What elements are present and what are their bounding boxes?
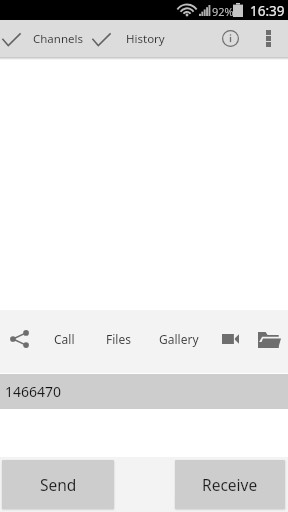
staticText: Call [54, 331, 75, 347]
staticText: 92% [212, 4, 234, 19]
button[interactable]: Call [42, 307, 87, 370]
button[interactable]: Send [2, 460, 114, 509]
staticText: 1466470 [5, 382, 62, 401]
button[interactable]: More options [252, 20, 285, 57]
staticText: Send [40, 474, 77, 495]
staticText: History [126, 31, 165, 47]
button[interactable]: Video call [212, 319, 248, 359]
button[interactable]: Files [100, 307, 137, 370]
button[interactable]: Receive [175, 460, 285, 509]
staticText: Gallery [159, 331, 199, 347]
button[interactable]: History [92, 20, 172, 57]
button[interactable]: 1466470 [0, 374, 288, 409]
button[interactable]: Gallery [155, 307, 203, 370]
button[interactable]: Open folder [250, 320, 288, 360]
staticText: Receive [202, 474, 258, 495]
staticText: 16:39 [250, 2, 285, 20]
staticText: Files [106, 331, 131, 347]
staticText: Channels [33, 31, 84, 47]
button[interactable]: Channels [0, 20, 92, 57]
button[interactable]: Info [212, 20, 249, 57]
button[interactable]: Share [1, 319, 37, 359]
